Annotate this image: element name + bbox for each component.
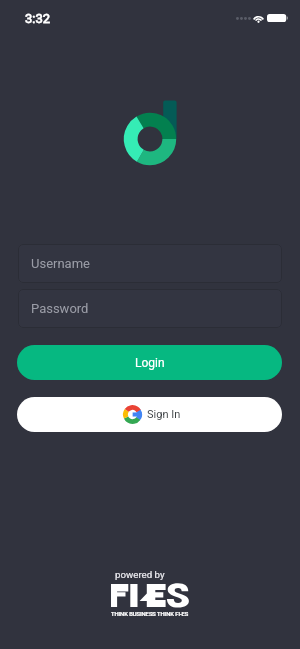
staticText: Sign In — [147, 408, 181, 421]
staticText: Login — [135, 356, 165, 370]
button[interactable]: Username — [18, 244, 282, 283]
staticText: 3:32 — [25, 11, 51, 26]
staticText: powered by — [115, 569, 165, 580]
staticText: THINK BUSINESS THINK FI-ES — [111, 611, 189, 618]
button[interactable]: Password — [18, 289, 282, 328]
button[interactable]: Login — [17, 345, 282, 380]
button[interactable]: Sign In — [17, 397, 282, 432]
staticText: Username — [31, 256, 90, 271]
staticText: Password — [31, 301, 89, 316]
